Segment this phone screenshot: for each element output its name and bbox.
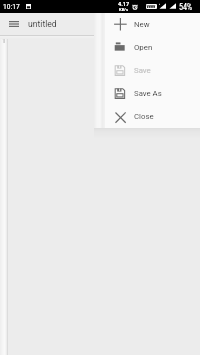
staticText: KB/s — [119, 7, 129, 12]
staticText: Open — [134, 43, 153, 52]
staticText: New — [134, 20, 150, 29]
button[interactable]: Save As — [105, 82, 200, 105]
staticText: Save — [134, 66, 151, 75]
button[interactable]: Open — [105, 36, 200, 59]
staticText: 4.17 — [118, 1, 130, 8]
button[interactable]: Navigation menu — [4, 14, 24, 34]
button[interactable]: New — [105, 13, 200, 36]
staticText: 54% — [179, 2, 193, 12]
staticText: 1 — [2, 37, 6, 45]
button[interactable]: Save — [105, 59, 200, 82]
staticText: Save As — [134, 89, 162, 98]
staticText: 10:17 — [3, 2, 20, 11]
staticText: untitled — [28, 19, 57, 29]
staticText: Close — [134, 112, 154, 121]
button[interactable]: Close — [105, 105, 200, 128]
